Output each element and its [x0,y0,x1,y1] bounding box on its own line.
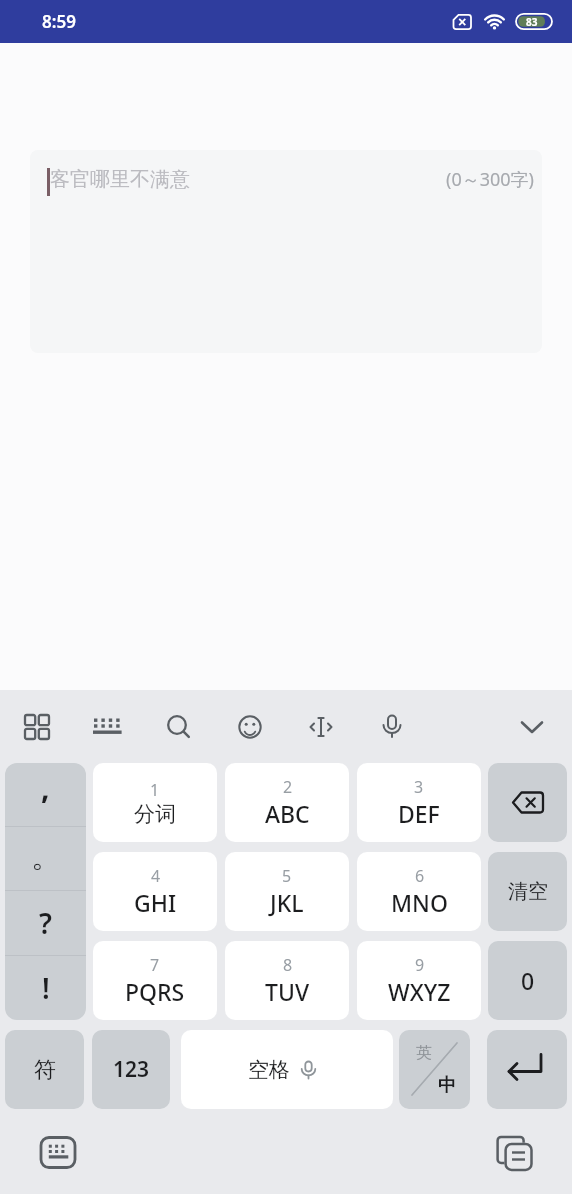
staticText: 83 [526,15,538,29]
staticText: 7 [150,954,160,976]
staticText: ABC [265,798,310,829]
staticText: 8 [283,954,293,976]
button[interactable]: 123 [92,1030,170,1109]
staticText: 符 [34,1056,56,1084]
button[interactable] [492,1130,536,1174]
staticText: TUV [265,976,310,1007]
staticText: 分词 [134,801,176,827]
button[interactable] [37,1130,81,1174]
staticText: GHI [134,887,177,918]
button[interactable]: 8 [225,941,349,1020]
staticText: 8:59 [42,10,76,33]
button[interactable]: 客官哪里不满意 [30,150,542,353]
staticText: 空格 [248,1057,290,1083]
button[interactable]: 0 [488,941,567,1020]
staticText: 0 [521,965,535,996]
button[interactable]: , [5,763,86,826]
button[interactable]: ? [5,891,86,955]
staticText: 清空 [508,879,548,904]
staticText: , [41,767,50,808]
button[interactable] [86,705,130,749]
staticText: 6 [415,865,425,887]
staticText: 1 [150,779,160,801]
staticText: MNO [391,887,448,918]
staticText: ! [42,969,50,1007]
button[interactable] [228,705,272,749]
staticText: WXYZ [388,976,451,1007]
button[interactable] [157,705,201,749]
staticText: 。 [31,838,61,876]
staticText: (0～300字) [446,167,534,192]
button[interactable]: 1 [93,763,217,842]
staticText: 2 [283,776,293,798]
button[interactable]: 3 [357,763,481,842]
button[interactable]: 符 [5,1030,84,1109]
button[interactable]: 英 [399,1030,470,1109]
staticText: 英 [416,1043,432,1063]
staticText: PQRS [125,976,185,1007]
button[interactable] [299,705,343,749]
button[interactable] [488,763,567,842]
staticText: 客官哪里不满意 [50,167,190,192]
staticText: 4 [151,865,161,887]
button[interactable]: 4 [93,852,217,931]
button[interactable]: 6 [357,852,481,931]
button[interactable]: 。 [5,827,86,890]
staticText: 123 [113,1055,150,1084]
staticText: 中 [438,1074,456,1097]
button[interactable]: 2 [225,763,349,842]
staticText: 9 [415,954,425,976]
staticText: JKL [270,887,304,918]
button[interactable]: 空格 [181,1030,393,1109]
button[interactable] [487,1030,567,1109]
button[interactable] [510,705,554,749]
button[interactable] [370,705,414,749]
staticText: DEF [398,798,440,829]
button[interactable]: 5 [225,852,349,931]
staticText: ? [39,904,52,942]
button[interactable]: 清空 [488,852,567,931]
staticText: 5 [282,865,292,887]
button[interactable] [15,705,59,749]
button[interactable]: 9 [357,941,481,1020]
staticText: 3 [414,776,424,798]
button[interactable]: 7 [93,941,217,1020]
button[interactable]: ! [5,956,86,1020]
